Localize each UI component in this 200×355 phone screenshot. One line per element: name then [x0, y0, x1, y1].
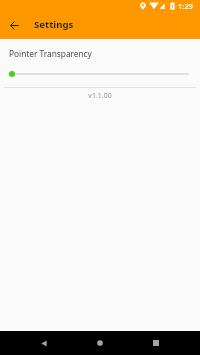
staticText: Pointer Transparency — [9, 48, 92, 59]
button[interactable]: Recent apps — [144, 331, 168, 355]
button[interactable]: Navigate up — [3, 14, 25, 36]
button[interactable] — [0, 68, 200, 80]
staticText: Settings — [34, 18, 74, 31]
staticText: v1.1.00 — [0, 91, 200, 101]
button[interactable]: Home — [88, 331, 112, 355]
button[interactable]: Back — [32, 331, 56, 355]
staticText: 1:29 — [178, 1, 194, 11]
